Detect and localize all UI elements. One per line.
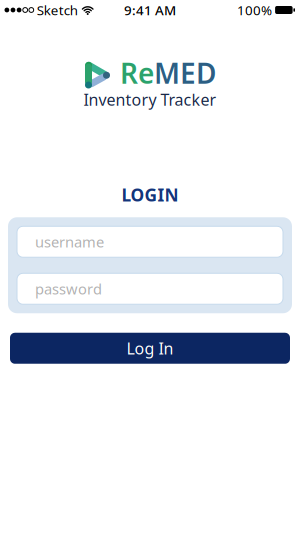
staticText: 100% bbox=[237, 1, 272, 19]
staticText: password bbox=[35, 279, 102, 298]
staticText: Inventory Tracker bbox=[83, 89, 216, 110]
button[interactable]: Log In bbox=[10, 333, 290, 364]
button[interactable]: username bbox=[17, 226, 283, 257]
staticText: MED bbox=[154, 54, 216, 92]
staticText: Log In bbox=[126, 338, 173, 359]
staticText: Sketch bbox=[37, 1, 78, 19]
staticText: Re bbox=[120, 54, 154, 92]
staticText: 9:41 AM bbox=[124, 1, 176, 19]
staticText: LOGIN bbox=[121, 183, 178, 206]
button[interactable]: password bbox=[17, 273, 283, 304]
staticText: username bbox=[35, 232, 104, 251]
